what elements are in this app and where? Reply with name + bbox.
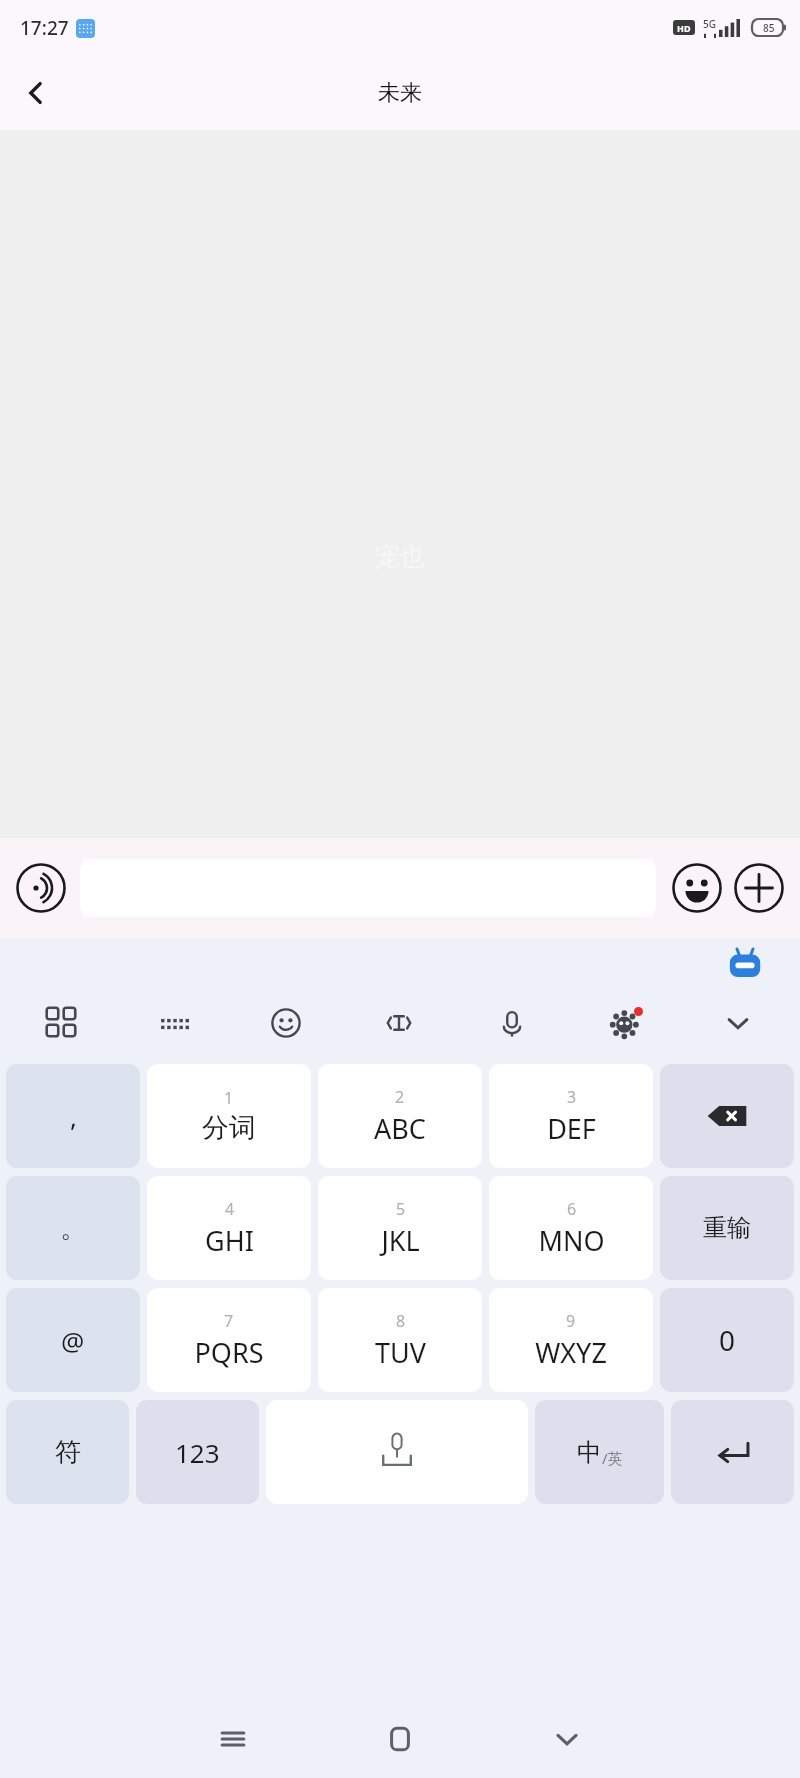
button[interactable]: Space xyxy=(266,1400,528,1504)
staticText: GHI xyxy=(205,1222,254,1259)
staticText: 1 xyxy=(224,1087,234,1109)
button[interactable]: 123 xyxy=(136,1400,259,1504)
other: Delete xyxy=(704,1093,750,1139)
staticText: 2 xyxy=(395,1086,405,1108)
staticText: 5 xyxy=(396,1198,406,1220)
button[interactable]: Menu xyxy=(149,1700,316,1778)
staticText: 9 xyxy=(566,1310,576,1332)
button[interactable]: Collapse xyxy=(681,992,794,1054)
staticText: DEF xyxy=(547,1110,596,1147)
staticText: 0 xyxy=(719,1321,736,1359)
button[interactable]: Text edit xyxy=(342,992,455,1054)
button[interactable]: 2 xyxy=(318,1064,482,1168)
staticText: 4 xyxy=(225,1198,235,1220)
other: Enter xyxy=(711,1430,755,1474)
button[interactable]: 6 xyxy=(489,1176,653,1280)
staticText: 6 xyxy=(567,1198,577,1220)
button[interactable]: 7 xyxy=(147,1288,311,1392)
button[interactable]: Back xyxy=(10,67,62,119)
button[interactable]: Hide keyboard xyxy=(483,1700,650,1778)
button[interactable]: , xyxy=(6,1064,140,1168)
staticText: 85 xyxy=(763,21,775,35)
button[interactable]: 0 xyxy=(660,1288,794,1392)
button[interactable]: Panels xyxy=(6,992,118,1054)
staticText: JKL xyxy=(381,1222,420,1259)
button[interactable]: Delete xyxy=(660,1064,794,1168)
staticText: 未来 xyxy=(378,79,422,107)
staticText: TUV xyxy=(375,1334,426,1371)
button[interactable]: Assistant xyxy=(722,942,768,988)
staticText: WXYZ xyxy=(535,1334,607,1371)
button[interactable]: More xyxy=(732,861,786,915)
button[interactable]: 5 xyxy=(318,1176,482,1280)
button[interactable]: @ xyxy=(6,1288,140,1392)
staticText: 。 xyxy=(60,1212,86,1245)
button[interactable]: Enter xyxy=(671,1400,794,1504)
button[interactable]: 中 xyxy=(535,1400,664,1504)
staticText: 8 xyxy=(396,1310,406,1332)
button[interactable]: Voice xyxy=(455,992,568,1054)
button[interactable]: Voice input xyxy=(14,861,68,915)
staticText: MNO xyxy=(538,1222,605,1259)
button[interactable]: Settings xyxy=(568,992,681,1054)
staticText: HD xyxy=(677,22,691,34)
staticText: 重输 xyxy=(703,1213,751,1243)
button[interactable]: 3 xyxy=(489,1064,653,1168)
button[interactable]: 8 xyxy=(318,1288,482,1392)
staticText: /英 xyxy=(602,1448,623,1468)
button[interactable]: Emoji xyxy=(670,861,724,915)
button[interactable]: Home xyxy=(316,1700,483,1778)
button[interactable]: 重输 xyxy=(660,1176,794,1280)
staticText: 中 xyxy=(577,1437,602,1468)
button[interactable]: 符 xyxy=(6,1400,129,1504)
staticText: 7 xyxy=(224,1310,234,1332)
button[interactable]: 9 xyxy=(489,1288,653,1392)
staticText: 符 xyxy=(55,1436,81,1469)
button[interactable]: Emoji xyxy=(230,992,342,1054)
staticText: PQRS xyxy=(194,1334,264,1371)
button[interactable]: 4 xyxy=(147,1176,311,1280)
staticText: 3 xyxy=(567,1086,577,1108)
button[interactable]: Keyboard layout xyxy=(118,992,230,1054)
staticText: , xyxy=(70,1099,77,1134)
staticText: @ xyxy=(61,1323,85,1358)
button[interactable]: 。 xyxy=(6,1176,140,1280)
staticText: 17:27 xyxy=(20,15,69,41)
staticText: 123 xyxy=(175,1435,220,1470)
button[interactable]: 1 xyxy=(147,1064,311,1168)
staticText: 分词 xyxy=(202,1111,256,1145)
staticText: 5G xyxy=(703,17,716,31)
staticText: ABC xyxy=(374,1110,426,1147)
